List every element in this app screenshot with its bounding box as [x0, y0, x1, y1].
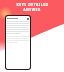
staticText: ANSWER — [23, 7, 41, 12]
button[interactable]: More options — [6, 17, 30, 20]
staticText: KEYS DETAILED — [16, 2, 49, 7]
